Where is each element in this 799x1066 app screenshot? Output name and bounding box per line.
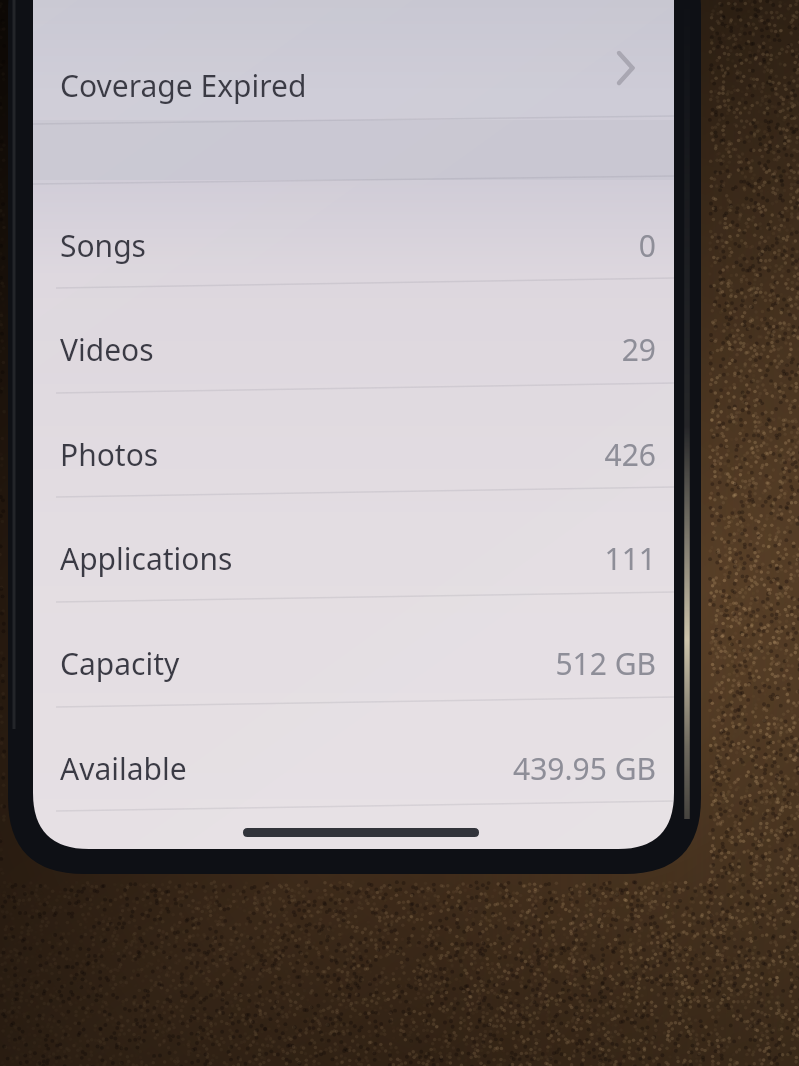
staticText: Songs (60, 225, 146, 266)
button[interactable]: Capacity (33, 602, 674, 706)
button[interactable]: Applications (33, 497, 674, 601)
button[interactable]: Coverage Expired, open details (33, 18, 674, 118)
staticText: Videos (60, 329, 154, 370)
button[interactable]: Videos (33, 288, 674, 392)
button[interactable]: Songs (33, 184, 674, 288)
staticText: Photos (60, 434, 159, 475)
staticText: 512 GB (300, 643, 656, 684)
staticText: 426 (300, 434, 656, 475)
button[interactable]: Photos (33, 393, 674, 497)
staticText: Applications (60, 538, 233, 579)
staticText: 0 (300, 225, 656, 266)
staticText: 29 (300, 329, 656, 370)
staticText: 439.95 GB (300, 748, 656, 789)
staticText: Coverage Expired (60, 65, 307, 106)
staticText: Available (60, 748, 187, 789)
staticText: Capacity (60, 643, 180, 684)
button[interactable]: Available (33, 707, 674, 811)
staticText: 111 (300, 538, 656, 579)
